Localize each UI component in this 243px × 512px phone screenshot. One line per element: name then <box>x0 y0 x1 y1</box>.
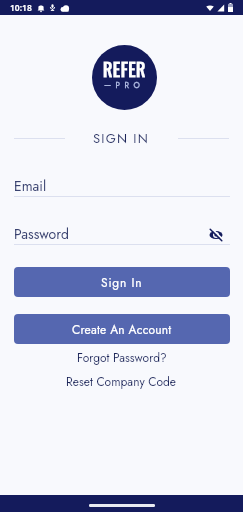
staticText: Password <box>14 224 69 244</box>
staticText: SIGN IN <box>93 129 150 148</box>
button[interactable]: Create An Account <box>14 314 230 344</box>
staticText: —PRO <box>104 79 145 91</box>
button[interactable] <box>209 228 223 242</box>
staticText: 10:18 <box>10 2 32 14</box>
staticText: Create An Account <box>72 321 172 338</box>
staticText: REFER <box>103 56 146 83</box>
button[interactable]: Forgot Password? <box>77 349 167 366</box>
staticText: Email <box>14 176 47 196</box>
staticText: Sign In <box>101 274 143 291</box>
button[interactable]: Sign In <box>14 267 230 297</box>
button[interactable]: Reset Company Code <box>66 373 177 390</box>
